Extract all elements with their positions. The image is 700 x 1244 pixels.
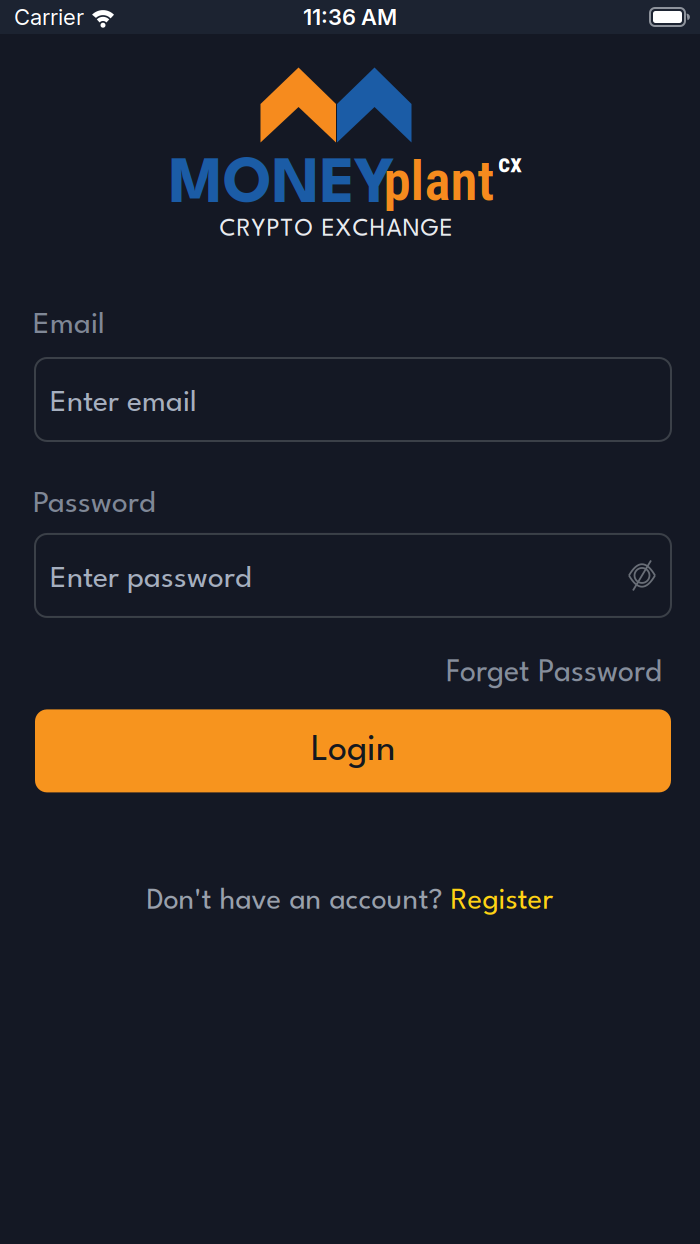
staticText: Password xyxy=(33,490,156,519)
staticText: T xyxy=(280,218,293,241)
staticText: Y xyxy=(251,218,265,241)
staticText: N xyxy=(403,218,420,241)
staticText: G xyxy=(421,218,439,241)
staticText: X xyxy=(336,218,352,241)
staticText: Carrier xyxy=(14,4,84,30)
button[interactable]: Forget Password xyxy=(446,659,662,688)
button[interactable]: Login xyxy=(0,709,700,792)
staticText: H xyxy=(370,218,386,241)
staticText: C xyxy=(219,218,235,241)
staticText: O xyxy=(294,218,312,241)
staticText: Email xyxy=(33,311,105,340)
staticText: Forget Password xyxy=(446,659,662,688)
staticText: Register xyxy=(450,887,553,915)
staticText: E xyxy=(440,218,453,241)
staticText: cx xyxy=(498,148,522,179)
staticText: E xyxy=(322,218,335,241)
staticText: 11:36 AM xyxy=(303,4,397,30)
staticText: MONEY xyxy=(169,156,395,217)
staticText: Enter email xyxy=(50,389,197,418)
staticText: C xyxy=(353,218,369,241)
staticText: Don't have an account? xyxy=(146,887,450,915)
staticText: A xyxy=(387,218,402,241)
button[interactable] xyxy=(629,559,671,591)
staticText: Login xyxy=(311,733,395,768)
staticText: Enter password xyxy=(50,565,252,594)
staticText: plant xyxy=(383,149,494,213)
button[interactable]: Register xyxy=(450,887,553,915)
staticText: P xyxy=(266,218,279,241)
staticText: R xyxy=(236,218,250,241)
